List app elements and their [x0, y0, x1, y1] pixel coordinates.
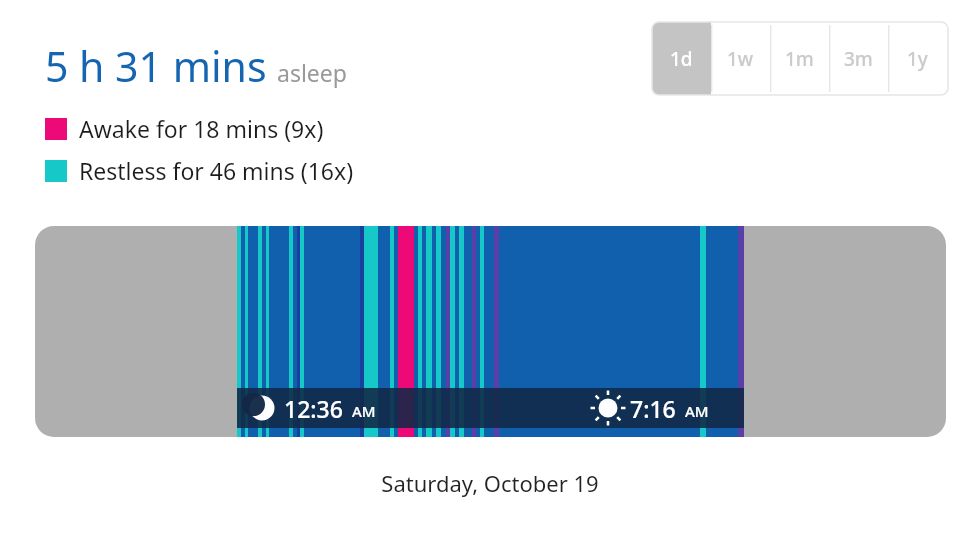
staticText: AM — [352, 401, 376, 421]
staticText: 1m — [785, 46, 814, 72]
button[interactable]: Restless for 46 mins (16x) — [45, 155, 354, 186]
button[interactable]: 1d — [652, 22, 711, 95]
staticText: 3m — [844, 46, 873, 72]
staticText: 1y — [907, 46, 928, 72]
button[interactable]: 12:36 — [35, 226, 946, 437]
other: Sleep start time — [250, 391, 280, 421]
button[interactable]: 1y — [888, 22, 947, 95]
staticText: 7:16 — [630, 393, 676, 424]
staticText: 1w — [727, 46, 754, 72]
button[interactable]: 1m — [770, 22, 829, 95]
staticText: 1d — [670, 46, 693, 72]
staticText: 5 h 31 mins — [45, 38, 267, 94]
button[interactable]: 3m — [829, 22, 888, 95]
staticText: 12:36 — [284, 393, 343, 424]
button[interactable]: 1w — [711, 22, 770, 95]
button[interactable]: Awake for 18 mins (9x) — [45, 113, 324, 144]
staticText: AM — [685, 401, 709, 421]
staticText: Restless for 46 mins (16x) — [79, 155, 354, 186]
staticText: Saturday, October 19 — [381, 468, 599, 498]
staticText: asleep — [277, 57, 347, 88]
staticText: Awake for 18 mins (9x) — [79, 113, 324, 144]
other: Wake time — [595, 391, 625, 421]
